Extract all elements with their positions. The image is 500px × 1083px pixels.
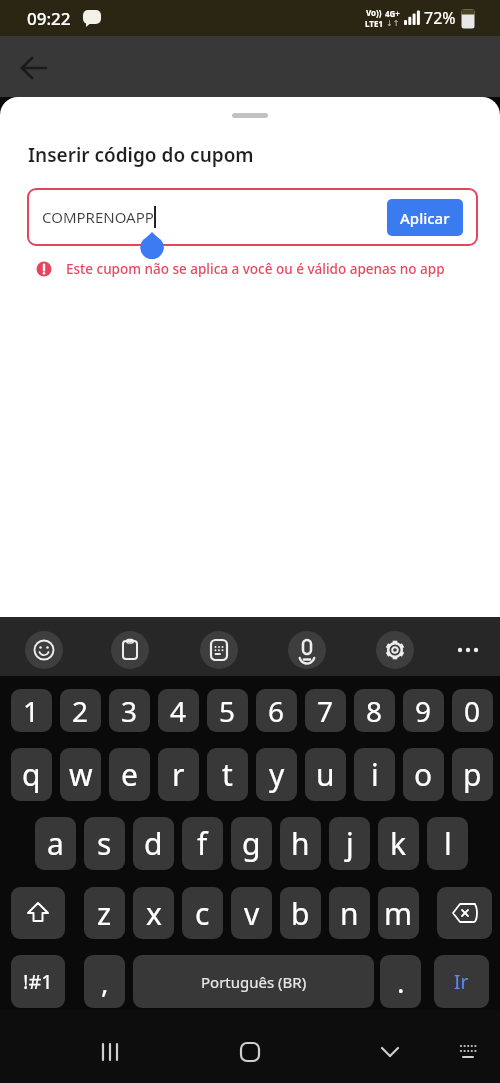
button[interactable]: z — [84, 887, 125, 939]
staticText: s — [97, 823, 112, 864]
button[interactable]: v — [231, 887, 272, 939]
button[interactable] — [0, 617, 100, 676]
staticText: 9 — [415, 692, 432, 730]
staticText: r — [172, 754, 185, 795]
button[interactable]: p — [452, 748, 493, 801]
button[interactable]: 9 — [403, 689, 444, 732]
button[interactable]: j — [329, 817, 370, 870]
button[interactable]: 7 — [305, 689, 346, 732]
button[interactable]: t — [207, 748, 248, 801]
button[interactable] — [437, 887, 492, 939]
staticText: l — [444, 823, 452, 864]
staticText: c — [195, 893, 210, 934]
button[interactable] — [0, 1010, 166, 1083]
button[interactable]: m — [378, 887, 419, 939]
button[interactable]: Aplicar — [387, 199, 463, 236]
button[interactable] — [12, 46, 56, 90]
staticText: Inserir código do cupom — [28, 142, 254, 168]
button[interactable]: 0 — [452, 689, 493, 732]
button[interactable]: COMPRENOAPP — [27, 188, 478, 246]
staticText: Este cupom não se aplica a você ou é vál… — [66, 260, 445, 278]
staticText: h — [291, 823, 310, 864]
staticText: Aplicar — [400, 208, 450, 228]
staticText: 5 — [219, 692, 236, 730]
staticText: t — [222, 754, 233, 795]
button[interactable]: d — [133, 817, 174, 870]
button[interactable]: e — [109, 748, 150, 801]
button[interactable] — [200, 617, 300, 676]
button[interactable]: 4 — [158, 689, 199, 732]
button[interactable] — [400, 617, 500, 676]
staticText: 72% — [424, 7, 456, 29]
staticText: e — [121, 754, 138, 795]
button[interactable]: o — [403, 748, 444, 801]
button[interactable]: f — [182, 817, 223, 870]
staticText: Vo)) — [366, 7, 382, 18]
button[interactable]: h — [280, 817, 321, 870]
button[interactable]: 3 — [109, 689, 150, 732]
button[interactable] — [11, 887, 65, 939]
button[interactable] — [300, 617, 400, 676]
button[interactable]: g — [231, 817, 272, 870]
staticText: 09:22 — [27, 7, 71, 30]
staticText: Ir — [454, 969, 469, 995]
staticText: u — [316, 754, 335, 795]
button[interactable]: u — [305, 748, 346, 801]
button[interactable]: w — [60, 748, 101, 801]
button[interactable]: Ir — [434, 955, 489, 1008]
staticText: j — [346, 823, 354, 864]
staticText: 2 — [72, 692, 89, 730]
button[interactable]: !#1 — [11, 955, 65, 1008]
staticText: k — [390, 823, 407, 864]
staticText: f — [197, 823, 208, 864]
staticText: y — [269, 754, 285, 795]
staticText: o — [414, 754, 433, 795]
button[interactable] — [100, 617, 200, 676]
button[interactable]: , — [84, 955, 125, 1008]
staticText: m — [384, 893, 413, 934]
staticText: 6 — [268, 692, 285, 730]
button[interactable]: 2 — [60, 689, 101, 732]
staticText: z — [97, 893, 112, 934]
staticText: q — [22, 754, 41, 795]
staticText: LTE1 — [365, 18, 383, 29]
staticText: 1 — [23, 692, 40, 730]
staticText: d — [144, 823, 163, 864]
button[interactable]: y — [256, 748, 297, 801]
staticText: w — [69, 754, 93, 795]
staticText: 0 — [464, 692, 481, 730]
staticText: 3 — [121, 692, 138, 730]
staticText: i — [371, 754, 379, 795]
staticText: 4 — [170, 692, 187, 730]
staticText: p — [463, 754, 482, 795]
button[interactable]: 5 — [207, 689, 248, 732]
button[interactable]: r — [158, 748, 199, 801]
button[interactable]: b — [280, 887, 321, 939]
button[interactable]: 8 — [354, 689, 395, 732]
button[interactable]: a — [35, 817, 76, 870]
staticText: 7 — [317, 692, 334, 730]
button[interactable]: l — [427, 817, 468, 870]
staticText: 8 — [366, 692, 383, 730]
button[interactable]: Português (BR) — [133, 955, 374, 1008]
button[interactable]: 6 — [256, 689, 297, 732]
staticText: , — [101, 963, 109, 1001]
staticText: 4G+ — [385, 8, 400, 19]
button[interactable]: i — [354, 748, 395, 801]
staticText: g — [242, 823, 261, 864]
staticText: x — [146, 893, 162, 934]
staticText: Português (BR) — [201, 972, 307, 992]
button[interactable]: x — [133, 887, 174, 939]
staticText: !#1 — [23, 968, 53, 995]
staticText: ↓↑ — [386, 19, 400, 28]
button[interactable] — [166, 1010, 333, 1083]
button[interactable] — [333, 1010, 500, 1083]
button[interactable]: . — [380, 955, 421, 1008]
button[interactable]: c — [182, 887, 223, 939]
staticText: a — [47, 823, 64, 864]
button[interactable]: q — [11, 748, 52, 801]
button[interactable]: 1 — [11, 689, 52, 732]
button[interactable]: n — [329, 887, 370, 939]
button[interactable]: k — [378, 817, 419, 870]
button[interactable]: s — [84, 817, 125, 870]
